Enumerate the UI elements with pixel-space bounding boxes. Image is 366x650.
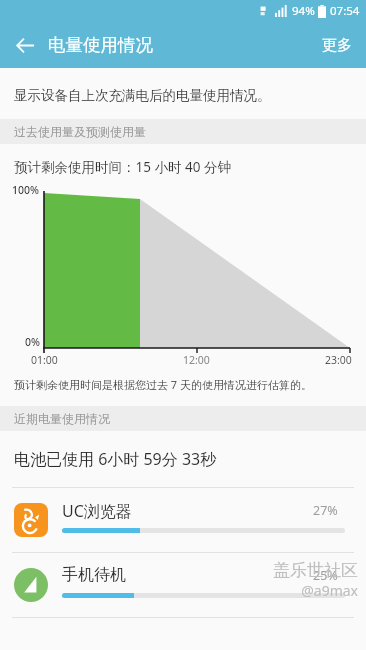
button[interactable]: 返回 <box>8 28 42 62</box>
button[interactable]: UC浏览器 <box>0 488 366 552</box>
staticText: @a9max <box>301 581 358 600</box>
staticText: 27% <box>313 502 338 519</box>
staticText: 25% <box>313 567 338 584</box>
staticText: 近期电量使用情况 <box>14 411 110 426</box>
staticText: 盖乐世社区 <box>273 560 358 581</box>
staticText: 0% <box>25 335 40 349</box>
button[interactable]: 更多 <box>308 26 366 65</box>
staticText: 手机待机 <box>62 565 126 585</box>
staticText: 电池已使用 6小时 59分 33秒 <box>14 448 217 470</box>
staticText: 100% <box>12 183 39 197</box>
staticText: 过去使用量及预测使用量 <box>14 124 146 139</box>
staticText: 电量使用情况 <box>48 34 153 56</box>
staticText: UC浏览器 <box>62 500 132 522</box>
staticText: 预计剩余使用时间是根据您过去 7 天的使用情况进行估算的。 <box>14 377 313 392</box>
staticText: 23:00 <box>325 353 352 367</box>
staticText: 预计剩余使用时间：15 小时 40 分钟 <box>14 158 231 176</box>
staticText: 显示设备自上次充满电后的电量使用情况。 <box>14 87 271 104</box>
staticText: 01:00 <box>31 353 58 367</box>
staticText: 94% <box>292 3 315 19</box>
staticText: 07:54 <box>330 3 360 19</box>
button[interactable]: 手机待机 <box>0 553 366 617</box>
staticText: 12:00 <box>183 353 210 367</box>
staticText: 更多 <box>322 36 352 55</box>
